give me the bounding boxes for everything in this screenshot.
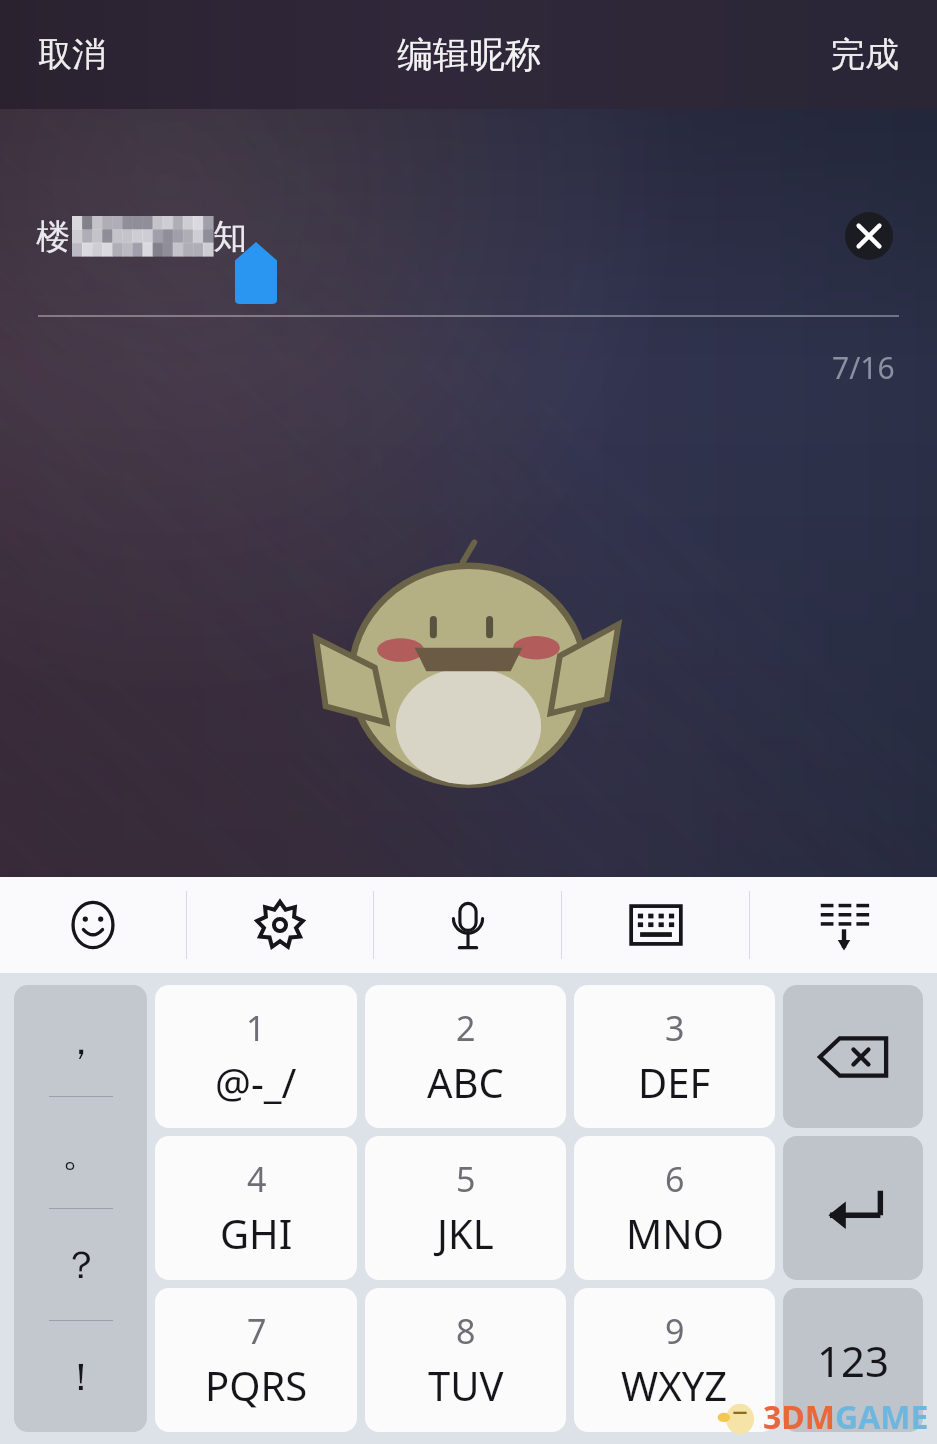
staticText: 3DM [763, 1395, 835, 1439]
staticText: TUV [428, 1358, 504, 1412]
button[interactable]: ， [14, 985, 147, 1432]
button[interactable]: 9 [574, 1288, 775, 1432]
button[interactable]: 2 [365, 985, 566, 1128]
staticText: 7 [247, 1308, 267, 1354]
button[interactable]: 5 [365, 1136, 566, 1280]
staticText: 。 [62, 1129, 100, 1177]
staticText: ！ [62, 1353, 100, 1401]
staticText: 取消 [38, 33, 106, 76]
button[interactable]: 8 [365, 1288, 566, 1432]
button[interactable]: 6 [574, 1136, 775, 1280]
button[interactable]: 退格 [783, 985, 923, 1128]
staticText: 4 [247, 1156, 267, 1202]
staticText: JKL [437, 1206, 494, 1260]
staticText: 1 [246, 1005, 266, 1051]
button[interactable]: 7 [155, 1288, 357, 1432]
staticText: 完成 [831, 33, 899, 76]
staticText: 5 [456, 1156, 476, 1202]
button[interactable]: 切换键盘 [562, 877, 749, 973]
button[interactable]: 1 [155, 985, 357, 1128]
staticText: 3 [665, 1005, 685, 1051]
button[interactable]: 语音输入 [374, 877, 561, 973]
staticText: WXYZ [621, 1358, 728, 1412]
staticText: DEF [638, 1055, 711, 1109]
button[interactable]: 设置 [187, 877, 373, 973]
staticText: ？ [62, 1241, 100, 1289]
staticText: 楼 [36, 215, 70, 258]
staticText: 7/16 [832, 347, 895, 388]
staticText: ABC [427, 1055, 504, 1109]
staticText: MNO [626, 1206, 724, 1260]
staticText: 6 [665, 1156, 685, 1202]
button[interactable]: 表情 [0, 877, 186, 973]
button[interactable]: 取消 [14, 21, 130, 88]
button[interactable]: 123 [783, 1288, 923, 1432]
staticText: GAME [835, 1395, 929, 1439]
staticText: @-_/ [215, 1055, 297, 1109]
staticText: 2 [456, 1005, 476, 1051]
staticText: 编辑昵称 [397, 32, 541, 77]
staticText: 9 [665, 1308, 685, 1354]
button[interactable]: 完成 [807, 21, 923, 88]
button[interactable]: 收起键盘 [750, 877, 937, 973]
staticText: 123 [817, 1332, 890, 1389]
button[interactable]: 换行 [783, 1136, 923, 1280]
staticText: 知 [213, 215, 247, 258]
staticText: GHI [220, 1206, 293, 1260]
button[interactable]: 3 [574, 985, 775, 1128]
staticText: 8 [456, 1308, 476, 1354]
button[interactable]: 4 [155, 1136, 357, 1280]
staticText: PQRS [205, 1358, 308, 1412]
staticText: ， [62, 1017, 100, 1065]
button[interactable]: 清除 [843, 210, 895, 262]
